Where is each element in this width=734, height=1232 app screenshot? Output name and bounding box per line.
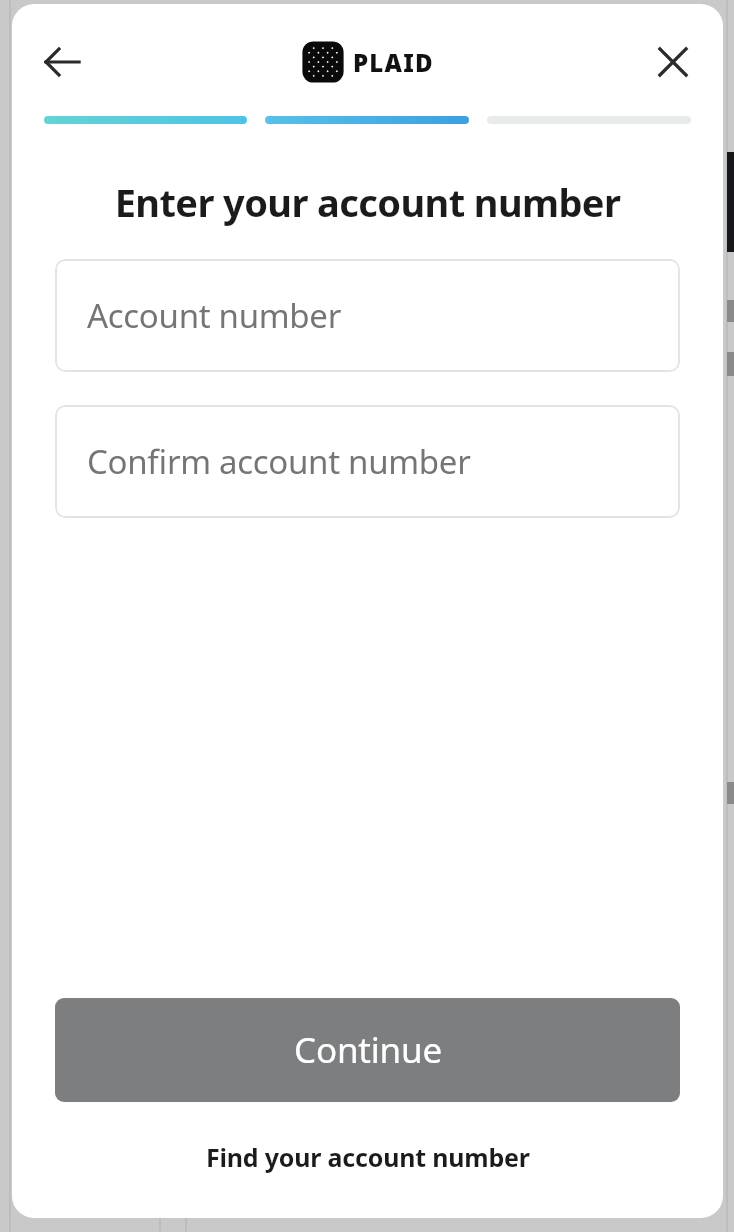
staticText: Find your account number: [206, 1140, 530, 1174]
button[interactable]: Account number: [55, 259, 680, 372]
button[interactable]: Continue: [55, 998, 680, 1102]
button[interactable]: Back: [32, 32, 92, 92]
button[interactable]: Close: [643, 32, 703, 92]
staticText: PLAID: [353, 46, 434, 79]
staticText: Enter your account number: [36, 176, 699, 228]
button[interactable]: Confirm account number: [55, 405, 680, 518]
button[interactable]: Find your account number: [12, 1134, 723, 1180]
staticText: Continue: [294, 1026, 442, 1074]
staticText: Confirm account number: [87, 439, 471, 484]
staticText: Account number: [87, 293, 341, 338]
